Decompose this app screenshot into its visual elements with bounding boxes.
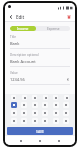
button[interactable]: key (21, 110, 27, 116)
button[interactable]: key (63, 110, 69, 116)
staticText: Description optional (10, 53, 39, 57)
button[interactable]: key (32, 95, 37, 100)
button[interactable]: key (42, 102, 48, 108)
button[interactable]: key (32, 110, 38, 116)
button[interactable]: key (32, 102, 38, 108)
button[interactable]: key (53, 110, 59, 116)
staticText: Bank Account (10, 59, 36, 64)
button[interactable]: key (63, 102, 69, 108)
button[interactable]: key (21, 102, 27, 108)
button[interactable]: Back (7, 13, 14, 20)
button[interactable]: key (11, 95, 16, 100)
staticText: Title (10, 35, 16, 39)
button[interactable]: key (64, 95, 69, 100)
button[interactable]: key (43, 95, 48, 100)
button[interactable]: key (21, 118, 27, 124)
button[interactable]: Title (5, 35, 75, 53)
staticText: Value (10, 71, 18, 75)
button[interactable]: Expense (36, 26, 70, 31)
staticText: Expense (47, 27, 60, 31)
button[interactable]: Value (5, 71, 75, 89)
button[interactable]: key (42, 118, 48, 124)
button[interactable]: nav (56, 138, 62, 144)
button[interactable]: SAVE (7, 127, 73, 135)
staticText: 1234.56 (10, 77, 25, 82)
button[interactable]: key (42, 110, 48, 116)
staticText: SAVE (36, 129, 45, 134)
button[interactable]: key (22, 95, 27, 100)
button[interactable]: key (11, 118, 17, 124)
button[interactable]: key (53, 102, 59, 108)
button[interactable]: Delete (65, 13, 73, 21)
button[interactable]: Income (10, 26, 36, 31)
button[interactable]: key (53, 118, 59, 124)
button[interactable]: key (11, 102, 17, 108)
button[interactable]: key (63, 118, 69, 124)
button[interactable]: key (32, 118, 38, 124)
staticText: Bank (10, 41, 20, 46)
button[interactable]: key (53, 95, 58, 100)
staticText: Edit (16, 14, 25, 20)
staticText: Income (17, 27, 29, 31)
button[interactable]: nav (37, 138, 43, 144)
button[interactable]: key (11, 110, 17, 116)
button[interactable]: nav (18, 138, 24, 144)
staticText: € (67, 77, 70, 82)
button[interactable]: Description optional (5, 53, 75, 71)
